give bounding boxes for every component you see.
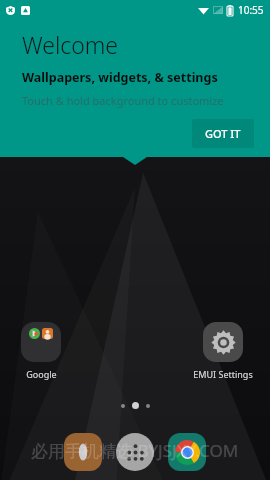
button[interactable]: Google	[8, 322, 74, 380]
button[interactable]: GOT IT	[192, 119, 254, 148]
button[interactable]: Chrome	[168, 433, 206, 471]
other: EMUI Settings	[203, 322, 243, 362]
staticText: Touch & hold background to customize	[22, 93, 224, 108]
button[interactable]: Apps	[116, 433, 154, 471]
staticText: Welcome	[22, 29, 119, 60]
staticText: EMUI Settings	[193, 368, 253, 380]
button[interactable]: EMUI Settings	[184, 322, 262, 380]
staticText: GOT IT	[205, 126, 241, 141]
staticText: Google	[26, 368, 57, 380]
staticText: Wallpapers, widgets, & settings	[22, 69, 218, 86]
staticText: 10:55	[238, 3, 264, 17]
button[interactable]: Phone	[64, 433, 102, 471]
staticText: 必用手机精选 BYJSJXY.COM	[31, 439, 239, 462]
